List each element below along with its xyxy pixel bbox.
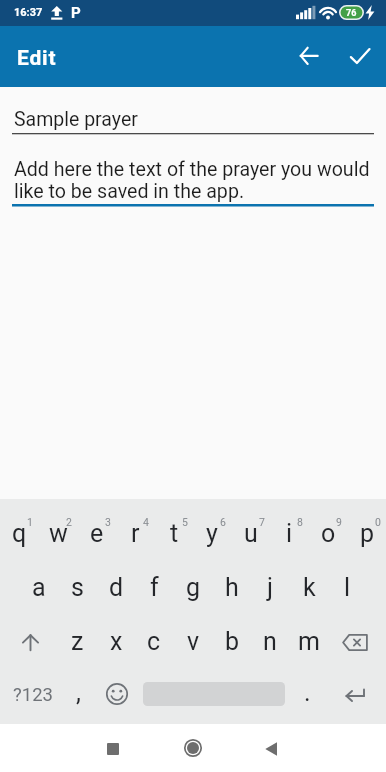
button[interactable]: t — [155, 512, 193, 554]
button[interactable]: l — [328, 566, 366, 608]
staticText: j — [267, 573, 273, 602]
staticText: x — [110, 627, 123, 656]
staticText: ?123 — [13, 684, 53, 706]
button[interactable]: g — [174, 566, 212, 608]
staticText: h — [225, 573, 239, 602]
button[interactable]: . — [288, 671, 326, 713]
button[interactable]: x — [97, 620, 135, 662]
button[interactable]: n — [251, 620, 289, 662]
staticText: Sample prayer — [14, 108, 138, 131]
button[interactable]: f — [135, 566, 173, 608]
staticText: m — [298, 627, 320, 656]
staticText: 7 — [259, 516, 265, 528]
staticText: n — [263, 627, 277, 656]
button[interactable]: u — [232, 512, 270, 554]
button[interactable] — [336, 32, 384, 80]
staticText: P — [71, 4, 81, 22]
staticText: o — [321, 519, 336, 548]
staticText: . — [304, 678, 311, 707]
staticText: s — [71, 573, 84, 602]
staticText: 9 — [336, 516, 342, 528]
button[interactable] — [93, 729, 133, 769]
button[interactable]: j — [251, 566, 289, 608]
staticText: d — [109, 573, 124, 602]
staticText: e — [90, 519, 104, 548]
button[interactable]: Sample prayer — [0, 87, 386, 499]
button[interactable]: q — [0, 512, 38, 554]
staticText: r — [131, 519, 140, 548]
staticText: , — [76, 678, 81, 707]
staticText: 1 — [27, 516, 33, 528]
button[interactable] — [99, 676, 134, 711]
button[interactable] — [336, 679, 374, 707]
staticText: v — [187, 627, 200, 656]
button[interactable]: h — [213, 566, 251, 608]
staticText: 8 — [297, 516, 303, 528]
staticText: l — [344, 573, 351, 602]
staticText: q — [12, 519, 27, 548]
staticText: u — [244, 519, 258, 548]
button[interactable]: y — [193, 512, 231, 554]
staticText: 0 — [375, 516, 381, 528]
staticText: p — [360, 519, 375, 548]
button[interactable]: , — [59, 671, 97, 713]
staticText: i — [286, 519, 293, 548]
button[interactable]: v — [174, 620, 212, 662]
button[interactable]: r — [116, 512, 154, 554]
button[interactable] — [251, 729, 291, 769]
staticText: 5 — [182, 516, 188, 528]
staticText: b — [225, 627, 240, 656]
button[interactable]: o — [309, 512, 347, 554]
button[interactable]: z — [58, 620, 96, 662]
staticText: a — [32, 573, 46, 602]
staticText: Edit — [17, 46, 57, 71]
staticText: t — [170, 519, 179, 548]
staticText: f — [150, 573, 159, 602]
button[interactable]: k — [290, 566, 328, 608]
button[interactable]: i — [270, 512, 308, 554]
staticText: z — [71, 627, 84, 656]
staticText: c — [147, 627, 161, 656]
staticText: 4 — [143, 516, 149, 528]
button[interactable]: b — [213, 620, 251, 662]
staticText: 6 — [220, 516, 226, 528]
button[interactable] — [8, 621, 53, 663]
staticText: 76 — [346, 8, 357, 19]
staticText: Add here the text of the prayer you woul… — [14, 158, 370, 202]
button[interactable]: p — [348, 512, 386, 554]
button[interactable]: d — [97, 566, 135, 608]
staticText: 16:37 — [14, 6, 43, 19]
staticText: w — [49, 519, 68, 548]
staticText: k — [303, 573, 316, 602]
button[interactable]: m — [290, 620, 328, 662]
button[interactable]: s — [58, 566, 96, 608]
staticText: 3 — [105, 516, 111, 528]
button[interactable] — [173, 728, 213, 768]
button[interactable]: e — [78, 512, 116, 554]
staticText: 2 — [66, 516, 72, 528]
button[interactable]: c — [135, 620, 173, 662]
button[interactable]: w — [39, 512, 77, 554]
staticText: y — [206, 519, 218, 548]
button[interactable]: a — [20, 566, 58, 608]
button[interactable] — [332, 621, 377, 663]
button[interactable] — [285, 32, 333, 80]
staticText: g — [186, 573, 201, 602]
